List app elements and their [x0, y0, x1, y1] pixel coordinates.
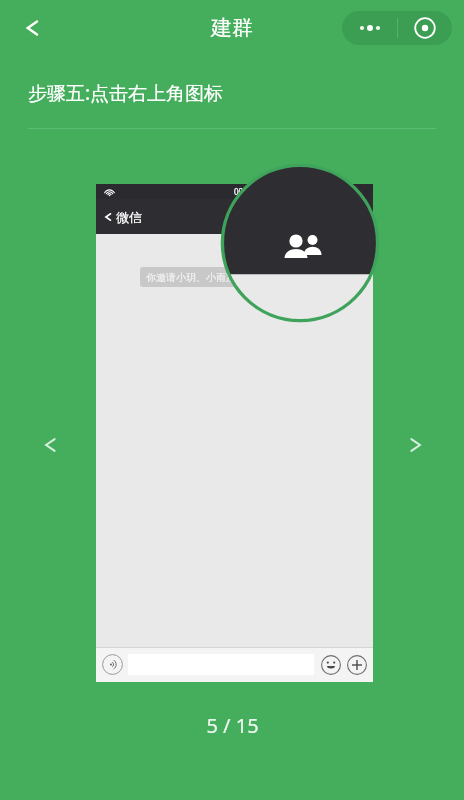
staticText: 步骤五:点击右上角图标	[28, 80, 224, 106]
button[interactable]: Back	[6, 0, 58, 56]
staticText: 群	[228, 208, 242, 226]
button[interactable]: Previous	[28, 421, 72, 469]
staticText: 你邀请小玥、小雨加入了群聊	[146, 271, 276, 284]
button[interactable]: Target	[398, 11, 452, 45]
button[interactable]: Next	[394, 421, 438, 469]
button[interactable]: Voice message	[102, 654, 123, 675]
button[interactable]: More	[346, 654, 367, 675]
button[interactable]: More options	[342, 11, 397, 45]
staticText: 5 / 15	[206, 712, 259, 739]
button[interactable]: Emoji	[320, 654, 341, 675]
button[interactable]: 微信	[102, 209, 142, 225]
staticText: 建群	[211, 15, 253, 41]
staticText: 微信	[116, 209, 142, 225]
staticText: 00	[234, 186, 244, 197]
